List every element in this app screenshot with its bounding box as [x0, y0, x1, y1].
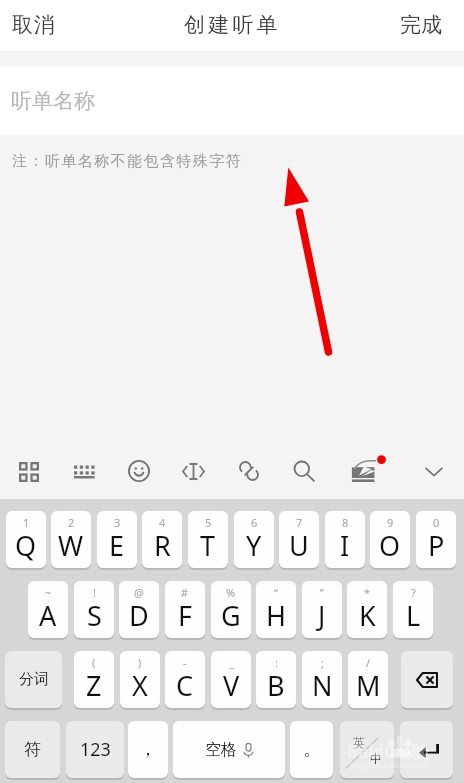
staticText: Baidu经验 [347, 740, 430, 763]
button[interactable]: ! [74, 581, 114, 638]
staticText: 3 [114, 515, 121, 530]
staticText: “ [274, 585, 278, 600]
button[interactable]: Keyboard [64, 453, 105, 494]
staticText: ) [138, 655, 142, 670]
button[interactable]: 完成 [386, 5, 464, 47]
staticText: ! [93, 585, 96, 600]
staticText: S [87, 597, 102, 634]
button[interactable]: Hide keyboard [415, 453, 453, 491]
button[interactable]: 2 [51, 511, 91, 568]
button[interactable]: @ [119, 581, 159, 638]
staticText: 6 [251, 515, 258, 530]
button[interactable]: 123 [66, 721, 124, 778]
staticText: # [181, 585, 189, 600]
staticText: L [406, 597, 421, 634]
staticText: C [176, 667, 194, 704]
button[interactable]: 4 [142, 511, 182, 568]
staticText: Z [86, 667, 102, 704]
button[interactable]: 8 [325, 511, 365, 568]
button[interactable]: 5 [188, 511, 228, 568]
button[interactable]: ; [302, 651, 342, 708]
button[interactable]: ( [74, 651, 114, 708]
staticText: O [379, 527, 401, 564]
staticText: N [312, 667, 333, 704]
staticText: E [109, 527, 125, 564]
staticText: ? [411, 585, 416, 600]
staticText: @ [134, 585, 144, 600]
staticText: Y [246, 527, 262, 564]
staticText: M [356, 667, 381, 704]
staticText: 听单名称 [11, 88, 95, 114]
staticText: / [366, 655, 371, 670]
button[interactable]: 9 [370, 511, 410, 568]
button[interactable]: Search [283, 450, 325, 492]
button[interactable]: 取消 [0, 5, 70, 47]
staticText: V [223, 667, 240, 704]
staticText: jingyan.baidu.com [350, 758, 428, 770]
button[interactable]: ” [302, 581, 342, 638]
staticText: P [428, 527, 445, 564]
staticText: F [178, 597, 193, 634]
staticText: A [39, 597, 57, 634]
staticText: 2 [68, 515, 75, 530]
staticText: X [132, 667, 148, 704]
button[interactable]: 7 [279, 511, 319, 568]
button[interactable]: * [347, 581, 387, 638]
button[interactable]: 1 [6, 511, 46, 568]
staticText: 英 [353, 735, 365, 750]
staticText: Q [15, 527, 37, 564]
button[interactable]: - [165, 651, 205, 708]
staticText: K [359, 597, 376, 634]
button[interactable]: “ [256, 581, 296, 638]
button[interactable]: ， [128, 721, 168, 778]
button[interactable]: Enter [400, 721, 453, 778]
button[interactable]: 分词 [5, 651, 62, 708]
button[interactable]: 0 [416, 511, 456, 568]
button[interactable]: 听单名称 [0, 66, 464, 135]
staticText: I [340, 527, 350, 564]
staticText: _ [229, 655, 234, 670]
button[interactable]: Keyboard layouts [9, 452, 49, 492]
staticText: ; [321, 655, 324, 670]
staticText: T [200, 527, 216, 564]
staticText: G [221, 597, 241, 634]
button[interactable]: : [256, 651, 296, 708]
button[interactable]: ) [120, 651, 160, 708]
button[interactable]: 6 [234, 511, 274, 568]
staticText: * [364, 585, 371, 600]
staticText: 符 [24, 739, 41, 760]
staticText: 123 [80, 737, 111, 762]
button[interactable]: 空格 [173, 721, 285, 778]
button[interactable]: Backspace [401, 651, 453, 708]
button[interactable]: Move cursor [172, 450, 215, 493]
button[interactable]: Handwriting [335, 440, 399, 496]
staticText: ( [92, 655, 96, 670]
staticText: ， [139, 738, 157, 761]
button[interactable]: / [348, 651, 388, 708]
staticText: 。 [303, 738, 321, 761]
staticText: 创建听单 [184, 12, 281, 38]
staticText: % [226, 585, 236, 600]
button[interactable]: Link [228, 450, 270, 492]
staticText: 分词 [19, 670, 49, 689]
button[interactable]: 3 [97, 511, 137, 568]
staticText: 取消 [12, 12, 56, 38]
button[interactable]: ~ [28, 581, 68, 638]
button[interactable]: 英 [340, 721, 394, 778]
button[interactable]: ? [393, 581, 433, 638]
staticText: 0 [433, 515, 440, 530]
staticText: 注：听单名称不能包含特殊字符 [12, 152, 243, 171]
staticText: 中 [370, 751, 382, 766]
staticText: - [183, 655, 187, 670]
staticText: H [266, 597, 287, 634]
button[interactable]: # [165, 581, 205, 638]
button[interactable]: _ [211, 651, 251, 708]
staticText: 8 [342, 515, 349, 530]
button[interactable]: 符 [5, 721, 60, 778]
button[interactable]: Emoji [118, 450, 160, 492]
button[interactable]: % [211, 581, 251, 638]
button[interactable]: 。 [290, 721, 333, 778]
staticText: U [289, 527, 309, 564]
staticText: : [275, 655, 278, 670]
staticText: W [58, 527, 84, 564]
